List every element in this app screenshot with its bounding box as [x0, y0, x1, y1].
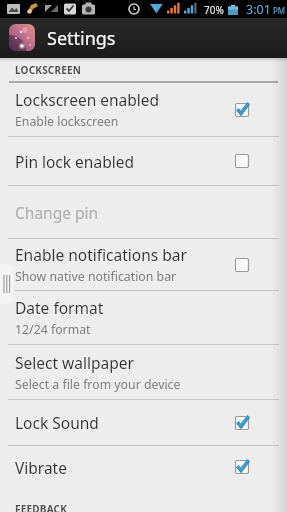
staticText: Settings — [47, 26, 116, 51]
button[interactable]: Change pin — [0, 186, 287, 238]
staticText: Lock Sound — [15, 412, 99, 433]
button[interactable]: Enable notifications bar — [0, 239, 287, 290]
staticText: Show native notification bar — [15, 268, 177, 285]
staticText: Pin lock enabled — [15, 151, 134, 172]
button[interactable]: Pin lock enabled — [0, 137, 287, 185]
button[interactable]: Date format — [0, 291, 287, 344]
staticText: Select wallpaper — [15, 352, 134, 373]
staticText: FEEDBACK — [15, 502, 68, 512]
staticText: Lockscreen enabled — [15, 89, 160, 110]
staticText: Date format — [15, 297, 104, 318]
staticText: 70% — [204, 3, 224, 17]
staticText: PM — [273, 5, 286, 16]
staticText: Change pin — [15, 202, 99, 223]
staticText: Select a file from your device — [15, 376, 181, 393]
staticText: Enable notifications bar — [15, 244, 187, 265]
staticText: 3:01 — [246, 1, 271, 18]
button[interactable]: Vibrate — [0, 446, 287, 488]
staticText: LOCKSCREEN — [15, 63, 82, 77]
button[interactable]: Lockscreen enabled — [0, 83, 287, 136]
button[interactable]: Lock Sound — [0, 400, 287, 445]
staticText: 12/24 format — [15, 321, 91, 338]
staticText: Vibrate — [15, 457, 67, 478]
staticText: Enable lockscreen — [15, 113, 119, 130]
button[interactable] — [9, 24, 35, 51]
button[interactable]: Select wallpaper — [0, 345, 287, 399]
